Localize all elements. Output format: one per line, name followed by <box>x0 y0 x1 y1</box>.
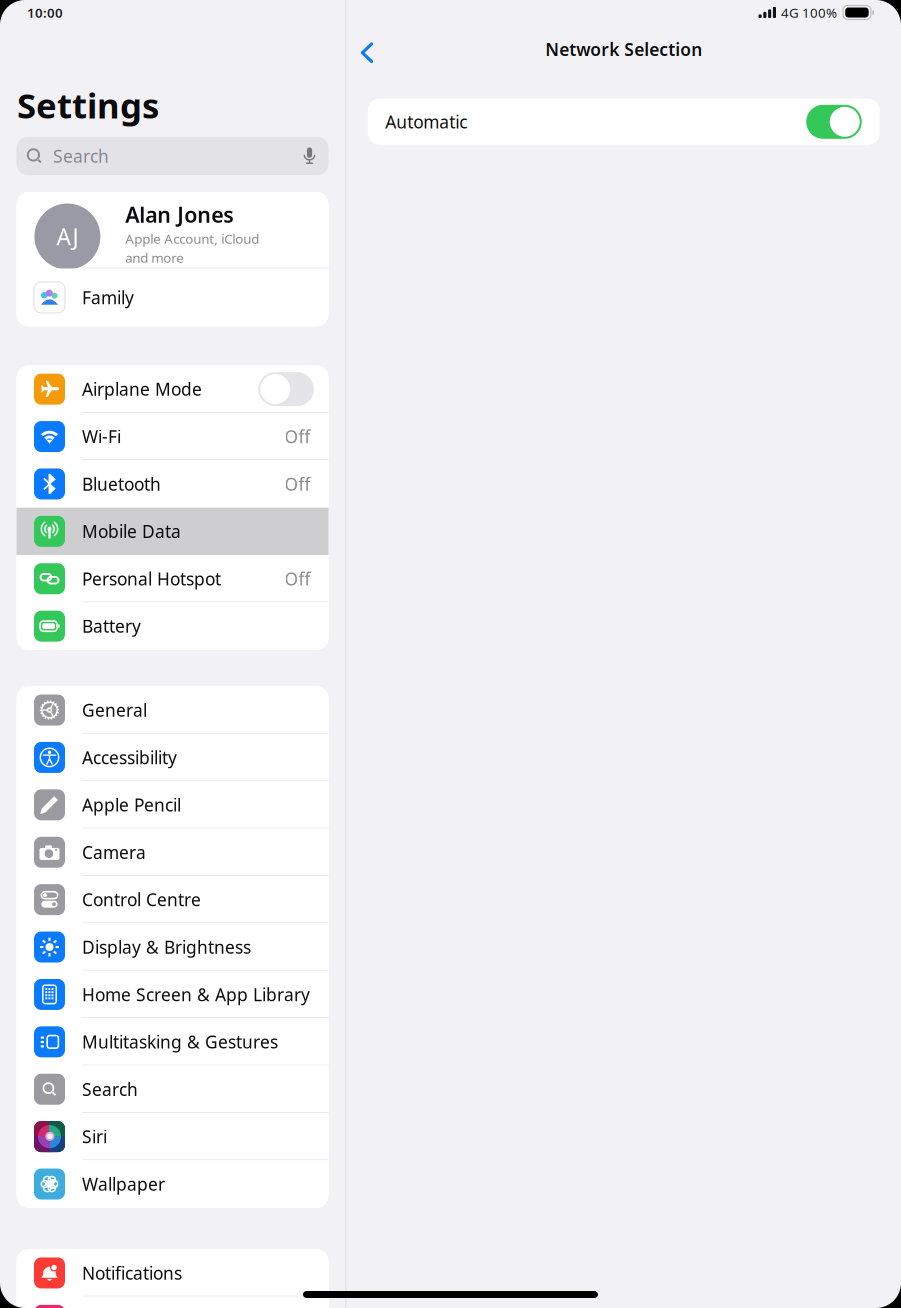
staticText: Settings <box>17 82 159 128</box>
staticText: Search <box>82 1078 138 1101</box>
button[interactable]: Back <box>347 24 387 75</box>
button[interactable]: Camera <box>16 828 328 876</box>
staticText: Display & Brightness <box>82 935 251 958</box>
staticText: Camera <box>82 841 146 864</box>
staticText: Battery <box>82 615 141 638</box>
button[interactable]: Search <box>16 137 328 175</box>
button[interactable]: AJ <box>16 192 328 268</box>
button[interactable]: Display & Brightness <box>16 923 328 971</box>
staticText: Off <box>284 567 310 590</box>
staticText: Accessibility <box>82 746 177 769</box>
staticText: Airplane Mode <box>82 378 202 401</box>
staticText: Apple Account, iCloud <box>125 230 259 247</box>
button[interactable]: Sounds <box>16 1297 328 1308</box>
button[interactable]: Wi-Fi <box>16 413 328 460</box>
button[interactable]: Airplane Mode <box>16 365 328 413</box>
button[interactable]: Family <box>16 268 328 326</box>
button[interactable]: Home Screen & App Library <box>16 971 328 1018</box>
staticText: Alan Jones <box>125 200 234 228</box>
staticText: Apple Pencil <box>82 793 181 816</box>
staticText: Bluetooth <box>82 472 161 495</box>
staticText: Multitasking & Gestures <box>82 1030 278 1053</box>
button[interactable]: Multitasking & Gestures <box>16 1018 328 1065</box>
button[interactable]: Wallpaper <box>16 1160 328 1208</box>
staticText: Siri <box>82 1125 107 1148</box>
button[interactable]: Bluetooth <box>16 460 328 508</box>
button[interactable]: Siri <box>16 1113 328 1160</box>
staticText: General <box>82 698 147 721</box>
staticText: and more <box>125 249 184 266</box>
staticText: AJ <box>56 221 78 252</box>
staticText: Control Centre <box>82 888 201 911</box>
button[interactable]: Battery <box>16 602 328 650</box>
button[interactable]: Mobile Data <box>16 508 328 555</box>
button[interactable]: Control Centre <box>16 876 328 923</box>
button[interactable]: Apple Pencil <box>16 781 328 828</box>
button[interactable]: Search <box>16 1065 328 1113</box>
staticText: Network Selection <box>545 38 702 61</box>
staticText: Home Screen & App Library <box>82 983 310 1006</box>
button[interactable]: Accessibility <box>16 734 328 781</box>
button[interactable]: Personal Hotspot <box>16 555 328 602</box>
staticText: Notifications <box>82 1261 182 1284</box>
staticText: Wi-Fi <box>82 425 121 448</box>
staticText: Family <box>82 286 134 309</box>
button[interactable]: Notifications <box>16 1249 328 1297</box>
staticText: 10:00 <box>27 4 63 21</box>
staticText: Mobile Data <box>82 520 181 543</box>
staticText: Off <box>284 472 310 495</box>
staticText: Personal Hotspot <box>82 567 221 590</box>
staticText: Off <box>284 425 310 448</box>
button[interactable]: General <box>16 686 328 734</box>
staticText: 4G 100% <box>781 4 837 21</box>
staticText: Wallpaper <box>82 1172 165 1195</box>
button[interactable]: Automatic <box>368 98 880 145</box>
staticText: Search <box>53 144 109 167</box>
staticText: Automatic <box>385 110 467 133</box>
